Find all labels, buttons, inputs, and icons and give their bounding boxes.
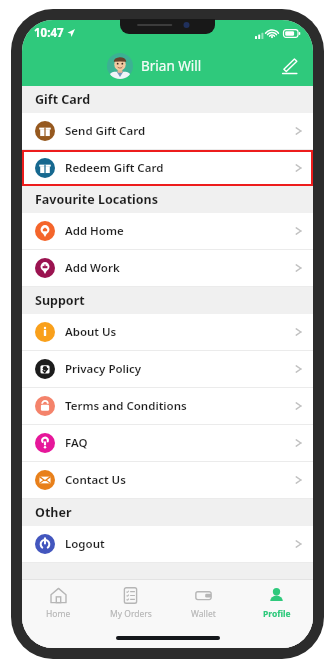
button[interactable]: About Us <box>22 314 313 350</box>
button[interactable]: Add Work <box>22 250 313 286</box>
button[interactable]: Privacy Policy <box>22 351 313 387</box>
staticText: Send Gift Card <box>65 123 146 139</box>
staticText: FAQ <box>65 435 88 451</box>
staticText: Other <box>35 504 72 521</box>
staticText: Profile <box>263 608 291 620</box>
staticText: Support <box>35 292 85 309</box>
button[interactable]: Home <box>22 580 94 627</box>
staticText: My Orders <box>110 608 152 620</box>
staticText: 10:47 <box>34 25 64 41</box>
button[interactable]: FAQ <box>22 425 313 461</box>
staticText: Gift Card <box>35 91 91 108</box>
button[interactable]: Terms and Conditions <box>22 388 313 424</box>
staticText: Contact Us <box>65 472 126 488</box>
staticText: Privacy Policy <box>65 361 142 377</box>
button[interactable]: My Orders <box>94 580 167 627</box>
button[interactable]: Contact Us <box>22 462 313 498</box>
staticText: Add Work <box>65 260 120 276</box>
button[interactable]: Brian Will <box>105 51 204 81</box>
staticText: Redeem Gift Card <box>65 160 164 176</box>
button[interactable]: Wallet <box>167 580 240 627</box>
button[interactable]: Add Home <box>22 213 313 249</box>
button[interactable]: Logout <box>22 526 313 562</box>
staticText: Favourite Locations <box>35 191 159 208</box>
staticText: Home <box>46 608 71 620</box>
button[interactable]: Redeem Gift Card <box>22 150 313 186</box>
button[interactable]: Send Gift Card <box>22 113 313 149</box>
staticText: Add Home <box>65 223 124 239</box>
staticText: Terms and Conditions <box>65 398 187 414</box>
staticText: Brian Will <box>141 57 202 75</box>
button[interactable]: Profile <box>240 580 313 627</box>
staticText: Wallet <box>191 608 216 620</box>
staticText: Logout <box>65 536 105 552</box>
staticText: About Us <box>65 324 117 340</box>
button[interactable]: Edit profile <box>276 53 302 79</box>
